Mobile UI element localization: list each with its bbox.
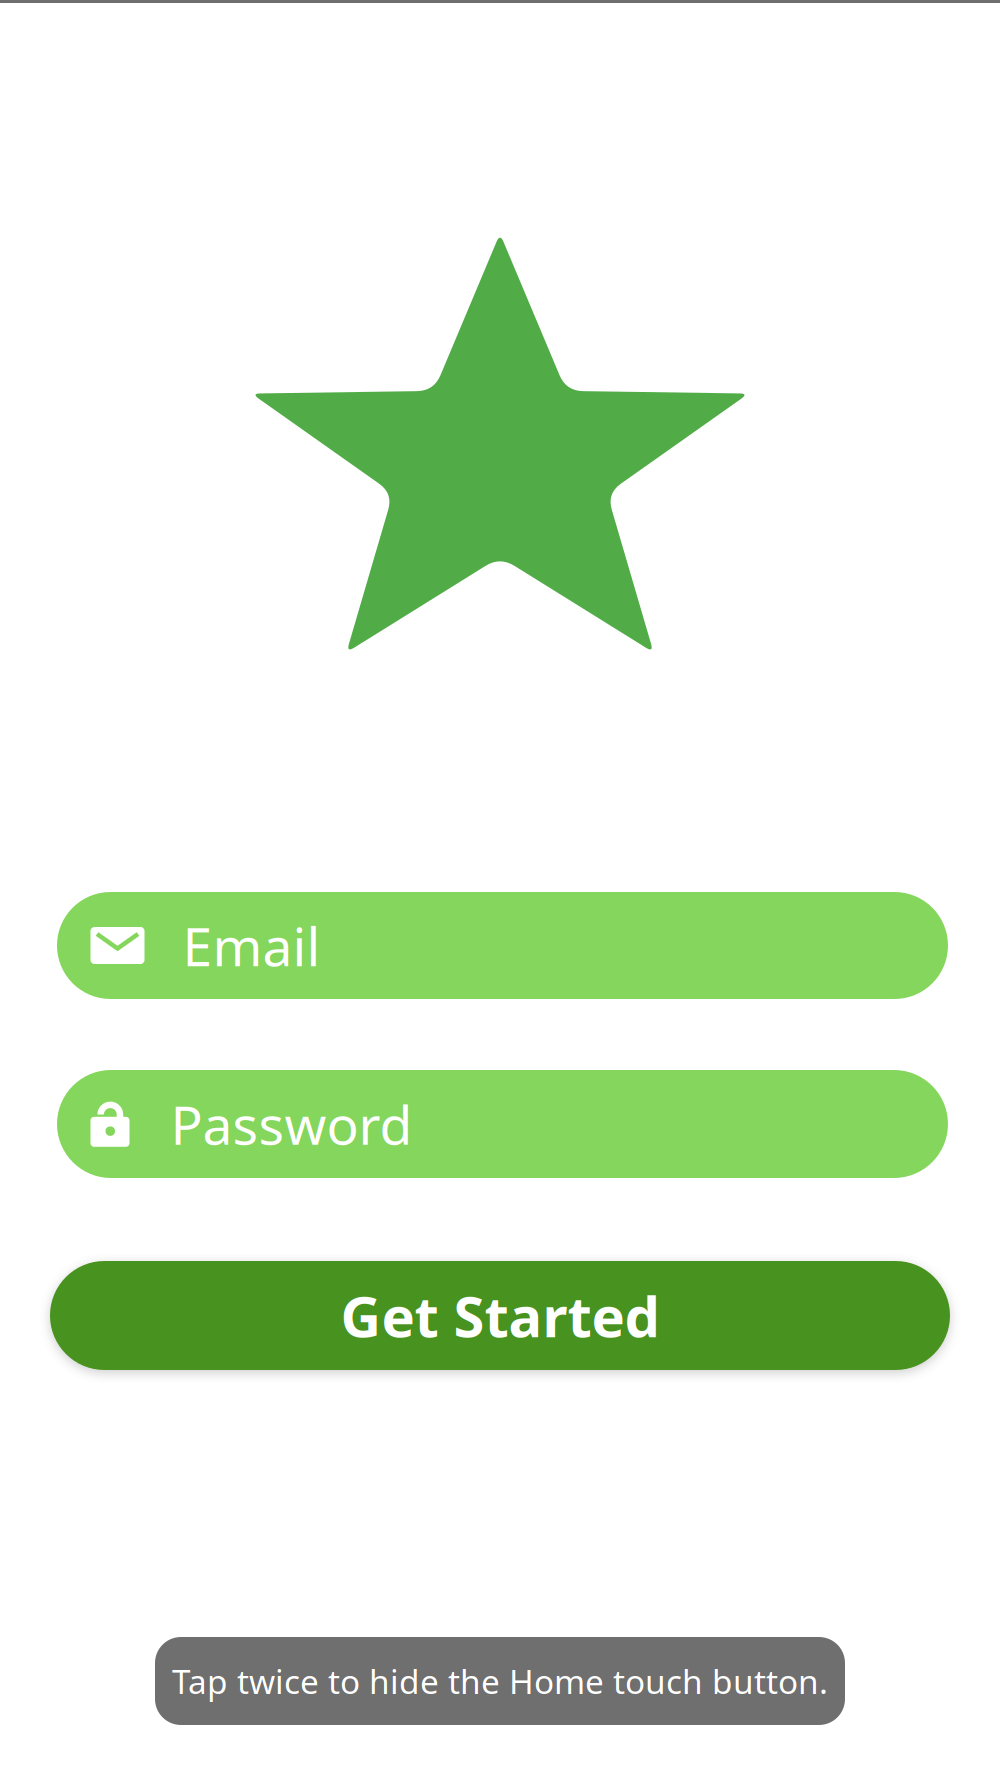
staticText: Email <box>182 910 320 981</box>
button[interactable]: Get Started <box>50 1261 950 1370</box>
staticText: Tap twice to hide the Home touch button. <box>172 1659 828 1703</box>
staticText: Password <box>170 1089 412 1159</box>
staticText: Get Started <box>340 1278 659 1353</box>
button[interactable]: Email <box>54 892 945 999</box>
button[interactable]: Password <box>54 1070 945 1178</box>
